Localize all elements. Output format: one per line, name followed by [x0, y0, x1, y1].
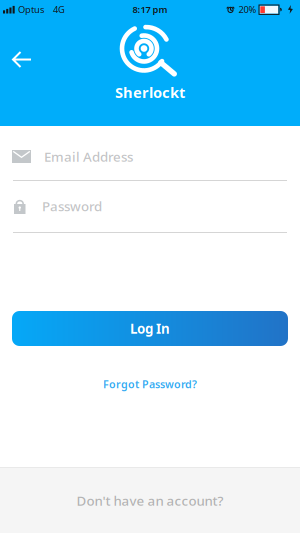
staticText: 8:17 pm: [132, 3, 167, 16]
staticText: Sherlockt: [115, 82, 185, 102]
staticText: Password: [42, 197, 102, 215]
staticText: Email Address: [44, 148, 133, 165]
button[interactable]: Back: [12, 51, 32, 68]
staticText: Optus: [18, 3, 44, 16]
staticText: 4G: [53, 3, 65, 16]
staticText: Log In: [130, 320, 170, 337]
button[interactable]: Log In: [12, 311, 288, 346]
button[interactable]: Email Address: [0, 150, 300, 163]
button[interactable]: Forgot Password?: [103, 377, 197, 391]
button[interactable]: Don't have an account?: [0, 467, 300, 533]
staticText: Forgot Password?: [103, 377, 197, 391]
staticText: Don't have an account?: [76, 492, 223, 509]
button[interactable]: Password: [0, 198, 300, 214]
staticText: 20%: [238, 3, 256, 16]
